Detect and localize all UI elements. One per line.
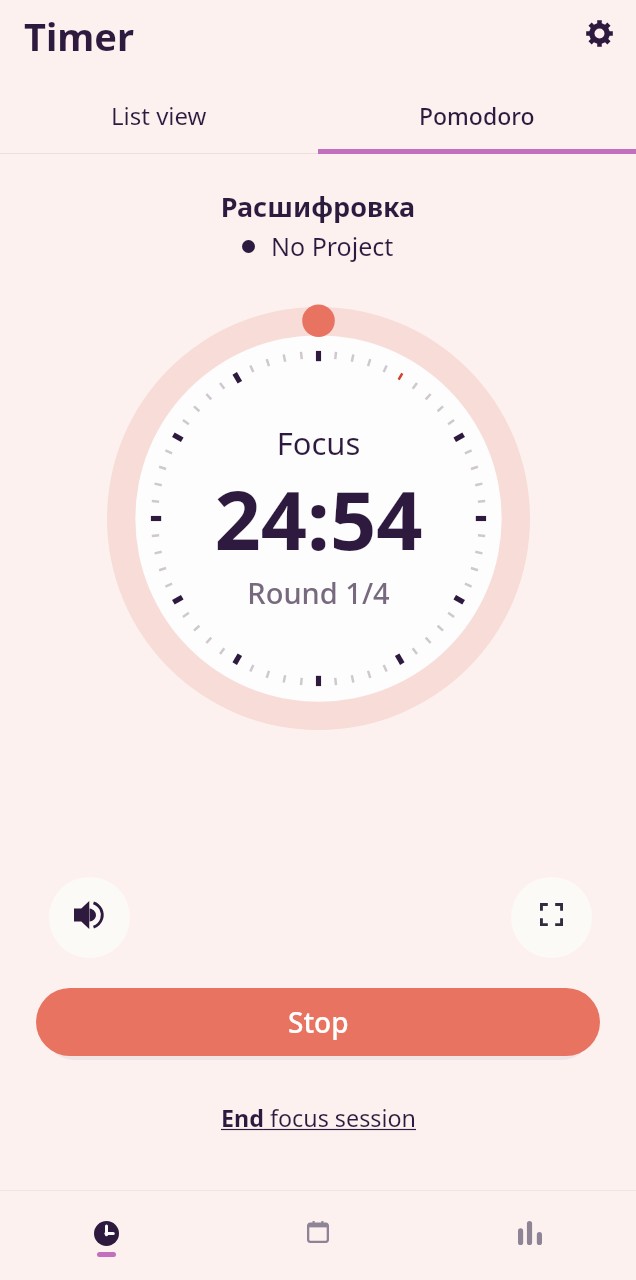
button[interactable]: End focus session [211,1096,426,1140]
staticText: Timer [24,10,135,62]
button[interactable]: Stop [36,988,600,1056]
staticText: Focus [107,422,530,464]
button[interactable]: Calendar [212,1191,424,1280]
staticText: List view [111,99,207,132]
button[interactable]: List view [0,84,318,154]
button[interactable]: Timer [0,1191,212,1280]
button[interactable]: Pomodoro [318,84,636,154]
staticText: Расшифровка [0,188,636,225]
staticText: Stop [288,1003,349,1041]
staticText: 24:54 [107,463,530,573]
staticText: Pomodoro [419,100,535,131]
button[interactable]: Mute [49,877,130,958]
staticText: Round 1/4 [107,573,530,612]
staticText: End focus session [221,1102,416,1134]
button[interactable]: Fullscreen [511,877,592,958]
staticText: No Project [271,229,394,263]
button[interactable]: Statistics [424,1191,636,1280]
button[interactable]: Settings [571,5,627,61]
